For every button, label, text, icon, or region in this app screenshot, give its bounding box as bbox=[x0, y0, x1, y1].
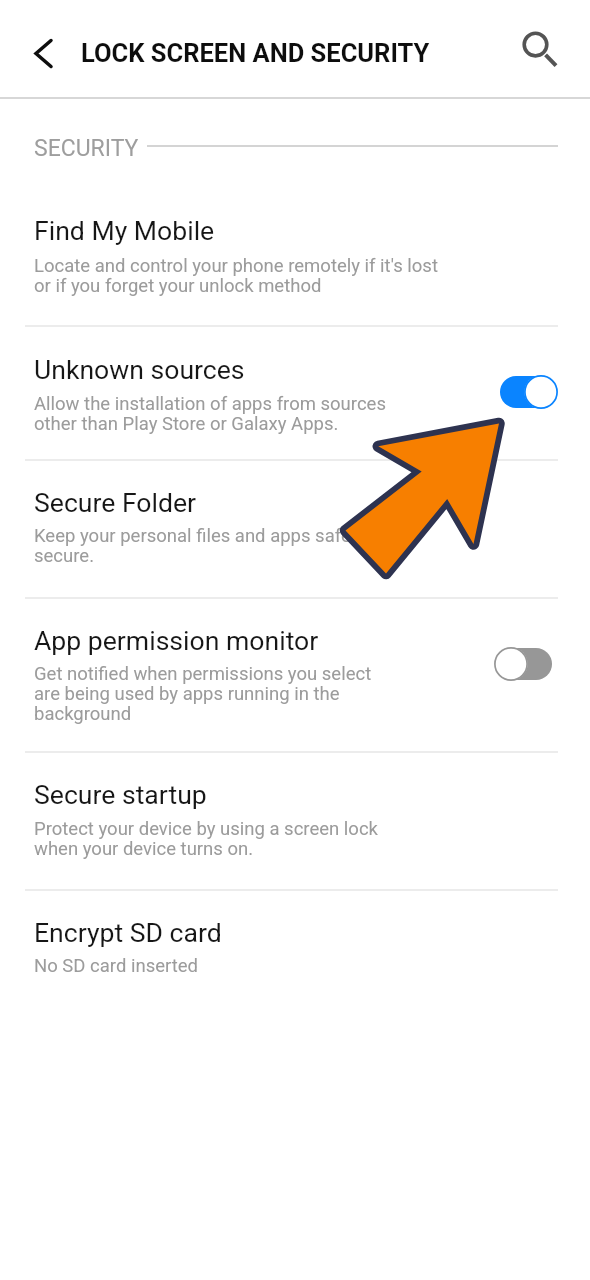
staticText: Unknown sources bbox=[34, 354, 245, 385]
staticText: LOCK SCREEN AND SECURITY bbox=[81, 38, 430, 68]
button[interactable]: Secure startup bbox=[0, 752, 590, 889]
staticText: Secure startup bbox=[34, 779, 207, 810]
button[interactable]: Find My Mobile bbox=[0, 160, 590, 325]
button[interactable]: Encrypt SD card bbox=[0, 890, 590, 1000]
button[interactable]: Secure Folder bbox=[0, 460, 590, 597]
button[interactable]: Unknown sources toggle bbox=[500, 376, 557, 408]
staticText: Keep your personal files and apps safe a… bbox=[34, 525, 387, 567]
button[interactable]: Unknown sources bbox=[0, 326, 590, 459]
staticText: Locate and control your phone remotely i… bbox=[34, 255, 438, 297]
button[interactable]: Search bbox=[505, 16, 575, 86]
staticText: Secure Folder bbox=[34, 487, 197, 518]
staticText: Find My Mobile bbox=[34, 215, 215, 246]
staticText: No SD card inserted bbox=[34, 955, 199, 977]
staticText: Encrypt SD card bbox=[34, 917, 222, 948]
button[interactable]: App permission monitor bbox=[0, 598, 590, 751]
staticText: Protect your device by using a screen lo… bbox=[34, 818, 378, 860]
button[interactable]: App permission monitor toggle bbox=[495, 648, 552, 680]
staticText: SECURITY bbox=[34, 135, 139, 162]
staticText: App permission monitor bbox=[34, 625, 319, 656]
staticText: Get notified when permissions you select… bbox=[34, 663, 372, 725]
staticText: Allow the installation of apps from sour… bbox=[34, 393, 386, 435]
button[interactable]: Back bbox=[11, 20, 77, 86]
